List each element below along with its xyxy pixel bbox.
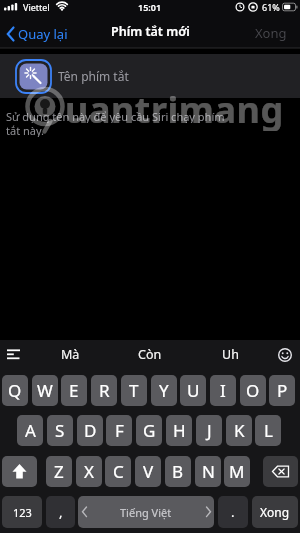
staticText: tắt này. — [6, 123, 45, 137]
staticText: Q — [8, 379, 22, 402]
button[interactable]: O — [240, 375, 266, 406]
staticText: Xong — [255, 24, 287, 42]
staticText: J — [207, 419, 212, 442]
staticText: W — [37, 379, 53, 402]
button[interactable]: V — [135, 456, 161, 487]
staticText: S — [55, 419, 65, 442]
staticText: 123 — [13, 505, 32, 520]
button[interactable]: F — [106, 415, 132, 446]
staticText: Quay lại — [18, 25, 68, 43]
staticText: M — [229, 460, 245, 483]
button[interactable]: M — [224, 456, 250, 487]
staticText: . — [231, 503, 235, 521]
button[interactable]: 123 — [2, 496, 42, 528]
staticText: Xong — [260, 504, 290, 520]
staticText: Y — [159, 379, 169, 402]
staticText: 61% — [262, 1, 280, 13]
button[interactable]: K — [226, 415, 252, 446]
button[interactable]: I — [210, 375, 236, 406]
staticText: P — [277, 379, 288, 402]
staticText: D — [84, 419, 97, 442]
button[interactable]: C — [105, 456, 131, 487]
button[interactable]: U — [180, 375, 206, 406]
staticText: F — [115, 419, 124, 442]
button[interactable]: . — [218, 496, 248, 528]
staticText: T — [129, 379, 139, 402]
button[interactable]: X — [76, 456, 102, 487]
staticText: Tên phím tắt — [58, 68, 129, 84]
button[interactable] — [263, 456, 298, 487]
button[interactable]: A — [17, 415, 43, 446]
button[interactable] — [2, 456, 37, 487]
button[interactable]: Tiếng Việt — [78, 496, 214, 528]
button[interactable]: Còn — [125, 346, 175, 362]
staticText: 15:01 — [138, 1, 162, 13]
staticText: Còn — [138, 346, 162, 362]
staticText: Z — [54, 460, 64, 483]
button[interactable]: T — [121, 375, 147, 406]
button[interactable]: S — [47, 415, 73, 446]
button[interactable]: J — [196, 415, 222, 446]
button[interactable]: , — [46, 496, 75, 528]
button[interactable]: P — [269, 375, 295, 406]
button[interactable]: Quay lại — [18, 22, 80, 46]
button[interactable]: N — [195, 456, 221, 487]
button[interactable]: Xong — [252, 496, 298, 528]
staticText: Uh — [222, 346, 239, 362]
staticText: H — [173, 419, 186, 442]
staticText: R — [99, 379, 110, 402]
staticText: A — [25, 419, 36, 442]
button[interactable]: H — [166, 415, 192, 446]
staticText: G — [143, 419, 156, 442]
staticText: L — [264, 419, 273, 442]
staticText: Phím tắt mới — [111, 23, 190, 40]
staticText: K — [234, 419, 245, 442]
button[interactable]: Mà — [45, 346, 95, 362]
button[interactable]: D — [77, 415, 103, 446]
staticText: B — [172, 460, 184, 483]
staticText: V — [143, 460, 154, 483]
button[interactable] — [0, 54, 300, 98]
staticText: Mà — [61, 346, 80, 362]
staticText: Tiếng Việt — [120, 505, 172, 520]
button[interactable]: R — [91, 375, 117, 406]
staticText: X — [84, 460, 94, 483]
staticText: Viettel — [23, 1, 50, 13]
staticText: U — [187, 379, 200, 402]
button[interactable]: B — [165, 456, 191, 487]
button[interactable]: Q — [2, 375, 28, 406]
staticText: I — [220, 379, 226, 402]
button[interactable]: Xong — [250, 22, 292, 44]
staticText: O — [246, 379, 260, 402]
staticText: N — [202, 460, 215, 483]
staticText: E — [69, 379, 79, 402]
button[interactable]: E — [61, 375, 87, 406]
staticText: Sử dụng tên này để yêu cầu Siri chạy phí… — [6, 109, 225, 123]
button[interactable]: Y — [151, 375, 177, 406]
staticText: C — [113, 460, 124, 483]
button[interactable]: L — [255, 415, 281, 446]
button[interactable]: Z — [46, 456, 72, 487]
button[interactable]: W — [32, 375, 58, 406]
button[interactable]: Uh — [205, 346, 255, 362]
button[interactable]: G — [136, 415, 162, 446]
staticText: , — [59, 503, 63, 521]
staticText: uantrimang — [65, 85, 284, 131]
